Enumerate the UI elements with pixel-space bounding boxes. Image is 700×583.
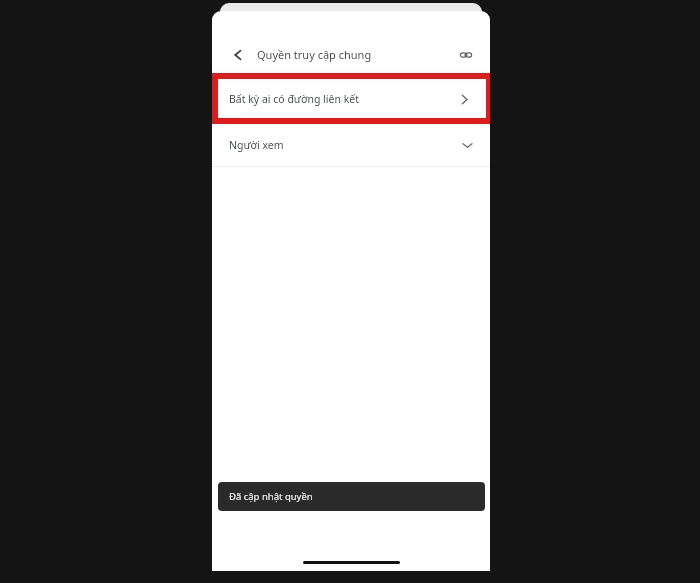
staticText: Người xem <box>229 138 284 152</box>
button[interactable]: Back <box>225 42 251 68</box>
button[interactable]: Bất kỳ ai có đường liên kết <box>218 79 486 118</box>
button[interactable]: Copy link <box>453 42 479 68</box>
staticText: Đã cập nhật quyền <box>229 490 313 503</box>
staticText: Quyền truy cập chung <box>257 47 372 62</box>
button[interactable]: Người xem <box>212 124 490 166</box>
button[interactable]: Đã cập nhật quyền <box>218 482 485 511</box>
staticText: Bất kỳ ai có đường liên kết <box>229 92 359 106</box>
